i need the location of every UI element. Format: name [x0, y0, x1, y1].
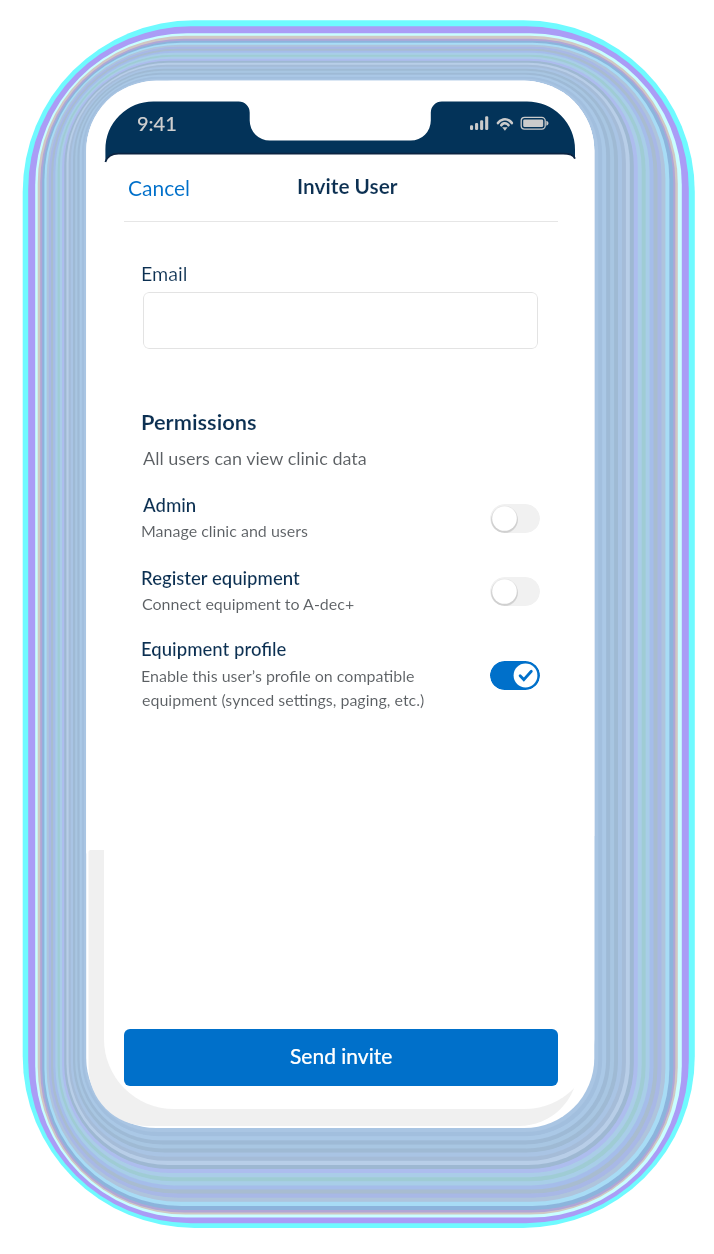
staticText: Send invite [290, 1043, 393, 1068]
staticText: Enable this user’s profile on compatible [141, 666, 415, 685]
button[interactable]: Send invite [124, 1029, 558, 1086]
button[interactable]: Admin [490, 504, 540, 533]
staticText: Email [141, 262, 188, 286]
staticText: equipment (synced settings, paging, etc.… [142, 690, 425, 709]
staticText: Connect equipment to A-dec+ [142, 594, 355, 613]
staticText: All users can view clinic data [143, 447, 367, 469]
staticText: Permissions [141, 408, 257, 434]
staticText: 9:41 [137, 111, 177, 135]
button[interactable] [143, 292, 538, 349]
staticText: Equipment profile [141, 638, 287, 660]
button[interactable]: Register equipment [490, 577, 540, 606]
staticText: Invite User [297, 173, 398, 198]
button[interactable]: Cancel [126, 170, 196, 202]
staticText: Manage clinic and users [141, 521, 308, 540]
staticText: Register equipment [141, 567, 300, 589]
staticText: Admin [143, 494, 197, 516]
button[interactable]: Equipment profile [490, 661, 540, 690]
staticText: Cancel [128, 175, 191, 200]
